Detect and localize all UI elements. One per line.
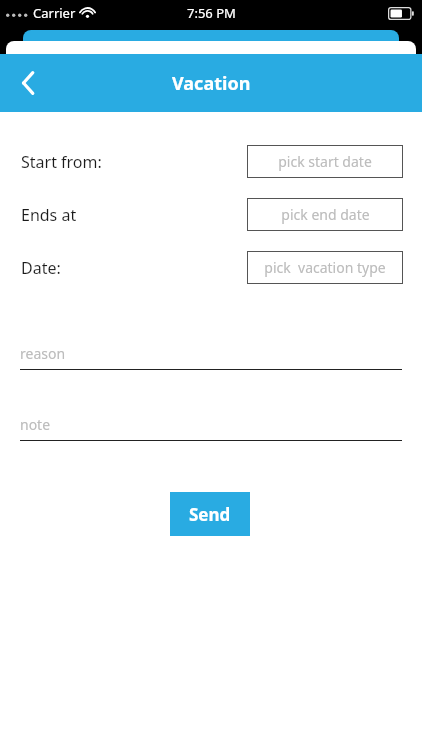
staticText: Start from:: [21, 151, 102, 173]
staticText: Carrier: [33, 4, 76, 22]
staticText: Ends at: [21, 204, 77, 226]
staticText: Vacation: [172, 71, 251, 96]
staticText: reason: [20, 344, 66, 363]
button[interactable]: pick vacation type: [247, 251, 403, 284]
button[interactable]: pick start date: [247, 145, 403, 178]
staticText: note: [20, 415, 51, 434]
button[interactable]: Back: [2, 54, 54, 112]
staticText: pick end date: [281, 205, 370, 224]
button[interactable]: note: [20, 413, 402, 441]
staticText: Send: [189, 503, 231, 526]
staticText: pick start date: [278, 152, 372, 171]
button[interactable]: reason: [20, 342, 402, 370]
staticText: Date:: [21, 257, 61, 279]
button[interactable]: Send: [170, 492, 250, 536]
staticText: 7:56 PM: [187, 4, 236, 22]
staticText: pick vacation type: [264, 258, 386, 277]
button[interactable]: pick end date: [247, 198, 403, 231]
